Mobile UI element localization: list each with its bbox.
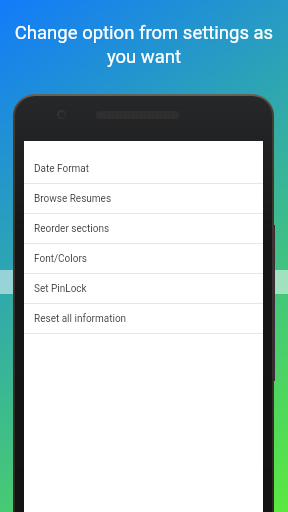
staticText: Reset all information	[34, 313, 127, 325]
button[interactable]: Font/Colors	[24, 244, 263, 273]
button[interactable]: Date Format	[24, 154, 263, 183]
staticText: Browse Resumes	[34, 193, 112, 205]
staticText: Font/Colors	[34, 253, 87, 265]
button[interactable]: Reset all information	[24, 304, 263, 333]
button[interactable]: Reorder sections	[24, 214, 263, 243]
button[interactable]: Set PinLock	[24, 274, 263, 303]
button[interactable]: Browse Resumes	[24, 184, 263, 213]
staticText: Reorder sections	[34, 223, 110, 235]
staticText: Set PinLock	[34, 283, 87, 295]
staticText: Date Format	[34, 163, 90, 175]
staticText: Change option from settings as you want	[6, 22, 282, 68]
